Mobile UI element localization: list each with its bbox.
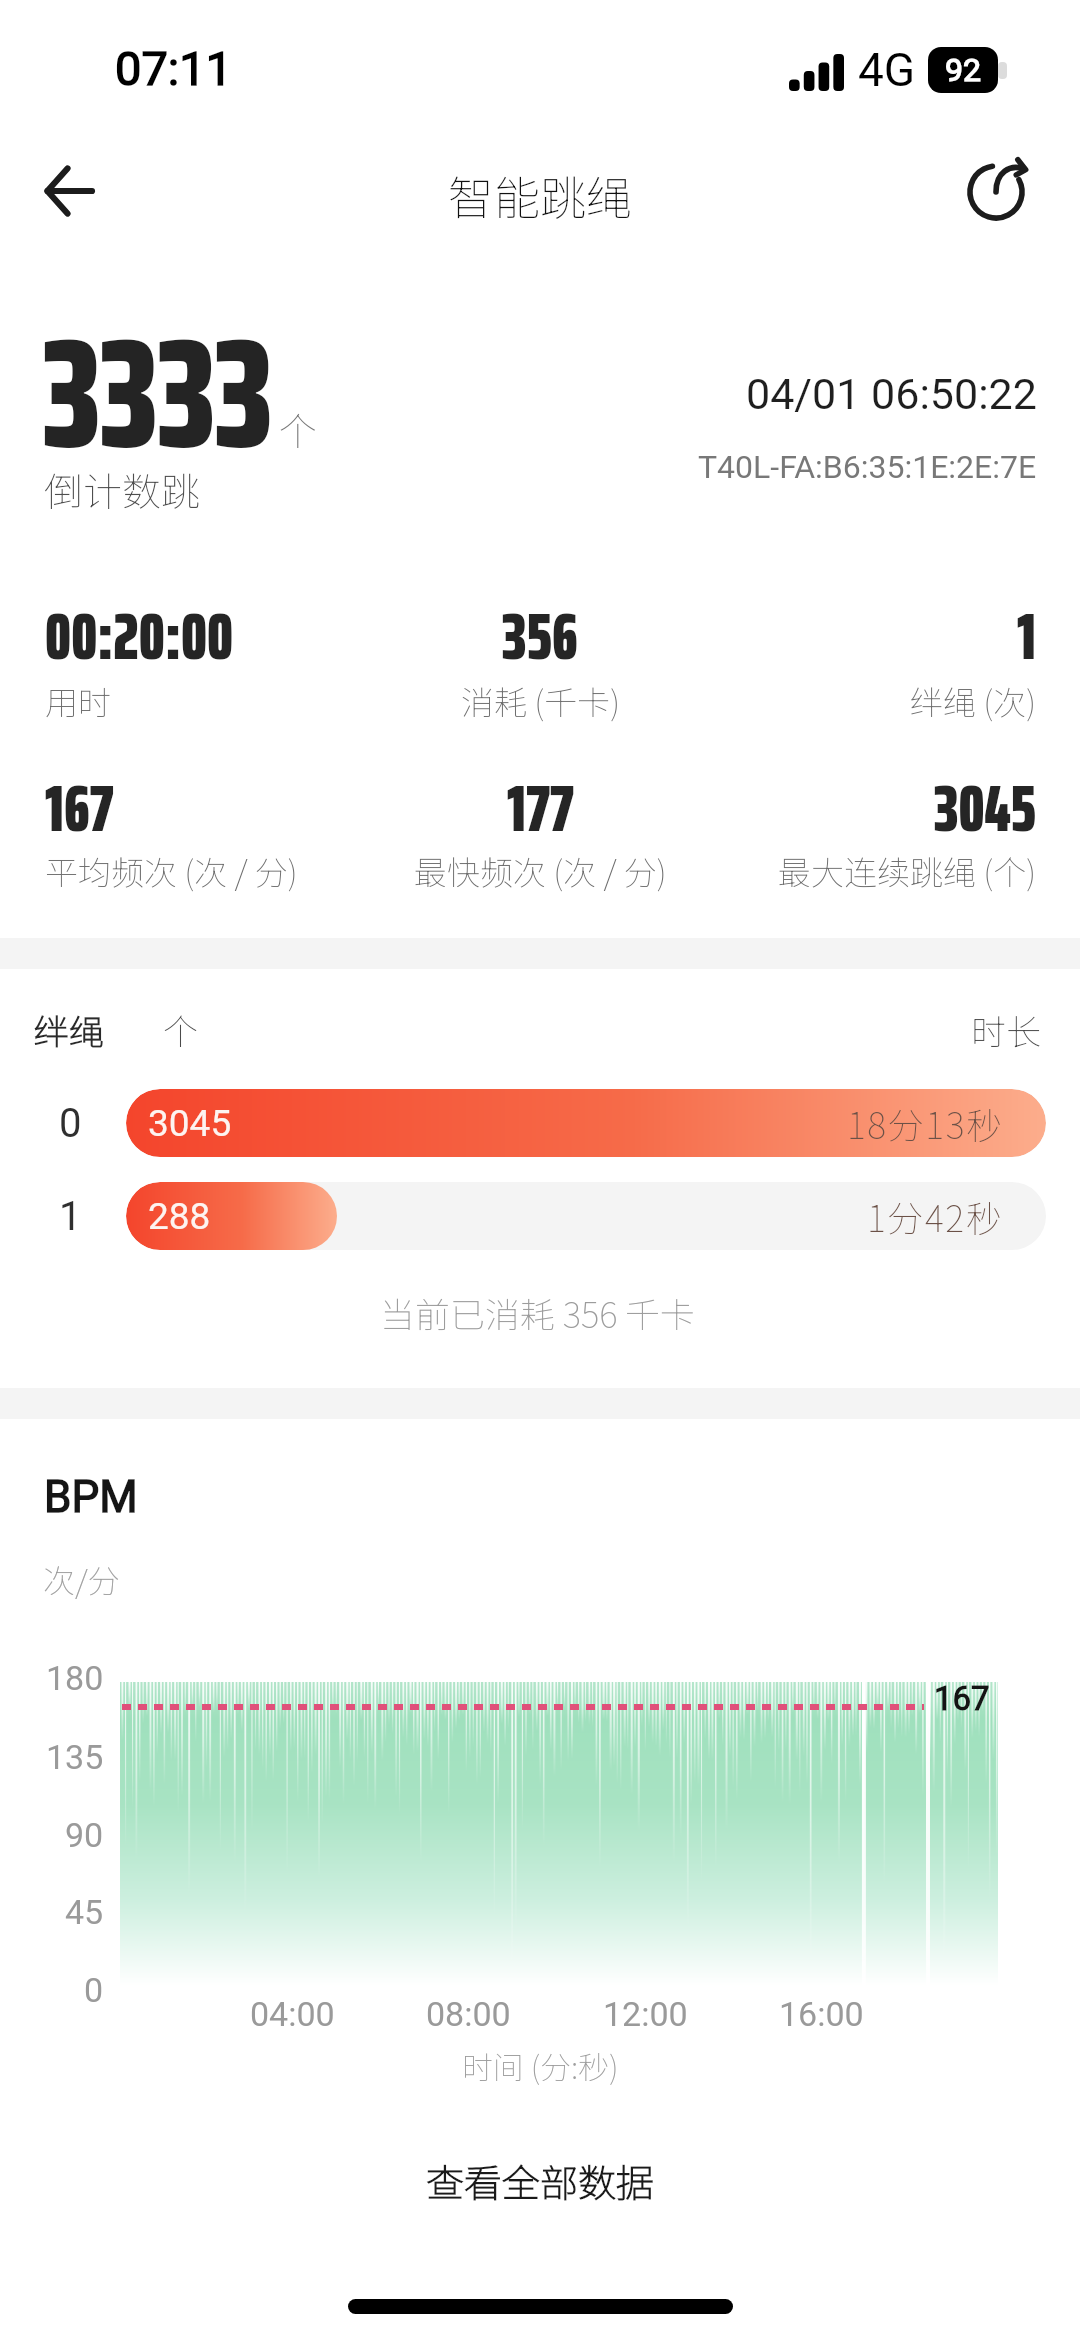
staticText: 绊绳 bbox=[34, 1004, 105, 1055]
staticText: 92 bbox=[945, 51, 981, 89]
staticText: 倒计数跳 bbox=[44, 461, 201, 517]
staticText: 07:11 bbox=[115, 41, 233, 96]
staticText: 3333 bbox=[43, 271, 273, 515]
staticText: 时间 (分:秒) bbox=[462, 2043, 619, 2088]
staticText: 绊绳 (次) bbox=[910, 677, 1036, 725]
staticText: BPM bbox=[44, 1471, 138, 1523]
staticText: 个 bbox=[163, 1004, 199, 1055]
staticText: 当前已消耗 356 千卡 bbox=[380, 1287, 696, 1338]
staticText: 16:00 bbox=[779, 1994, 864, 2034]
staticText: T40L-FA:B6:35:1E:2E:7E bbox=[698, 448, 1037, 486]
staticText: 1 bbox=[1017, 584, 1036, 688]
staticText: 最大连续跳绳 (个) bbox=[778, 847, 1036, 895]
staticText: 04:00 bbox=[250, 1994, 335, 2034]
button[interactable]: 0 bbox=[0, 1089, 1080, 1157]
staticText: 时长 bbox=[971, 1004, 1042, 1055]
staticText: 0 bbox=[84, 1970, 104, 2010]
staticText: 3045 bbox=[148, 1102, 232, 1145]
staticText: 04/01 06:50:22 bbox=[746, 369, 1037, 419]
staticText: 167 bbox=[45, 756, 114, 860]
button[interactable]: Share bbox=[948, 142, 1044, 238]
staticText: 08:00 bbox=[426, 1994, 511, 2034]
staticText: 356 bbox=[502, 584, 578, 688]
staticText: 用时 bbox=[45, 677, 111, 725]
staticText: 次/分 bbox=[43, 1556, 120, 1602]
staticText: 180 bbox=[46, 1658, 104, 1698]
staticText: 45 bbox=[65, 1892, 104, 1932]
staticText: 查看全部数据 bbox=[426, 2153, 655, 2208]
staticText: 个 bbox=[279, 401, 318, 456]
staticText: 1分42秒 bbox=[867, 1190, 1004, 1242]
staticText: 135 bbox=[46, 1737, 104, 1777]
staticText: 18分13秒 bbox=[847, 1097, 1004, 1149]
staticText: 智能跳绳 bbox=[448, 162, 632, 229]
staticText: 167 bbox=[934, 1679, 990, 1718]
button[interactable]: 1 bbox=[0, 1182, 1080, 1250]
staticText: 最快频次 (次 / 分) bbox=[414, 847, 667, 895]
button[interactable]: Back bbox=[14, 145, 124, 237]
staticText: 3045 bbox=[934, 756, 1036, 860]
staticText: 12:00 bbox=[603, 1994, 688, 2034]
staticText: 4G bbox=[858, 43, 916, 97]
staticText: 90 bbox=[65, 1815, 104, 1855]
staticText: 288 bbox=[148, 1195, 211, 1238]
button[interactable]: 查看全部数据 bbox=[0, 2132, 1080, 2228]
staticText: 平均频次 (次 / 分) bbox=[45, 847, 298, 895]
staticText: 177 bbox=[507, 756, 574, 860]
staticText: 0 bbox=[59, 1100, 82, 1147]
staticText: 00:20:00 bbox=[45, 584, 234, 688]
staticText: 1 bbox=[59, 1193, 82, 1240]
staticText: 消耗 (千卡) bbox=[461, 677, 620, 725]
